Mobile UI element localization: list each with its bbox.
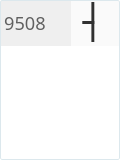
staticText: 9508 (4, 11, 46, 36)
button[interactable]: Collapse (71, 0, 120, 46)
button[interactable]: 9508 (0, 0, 71, 46)
